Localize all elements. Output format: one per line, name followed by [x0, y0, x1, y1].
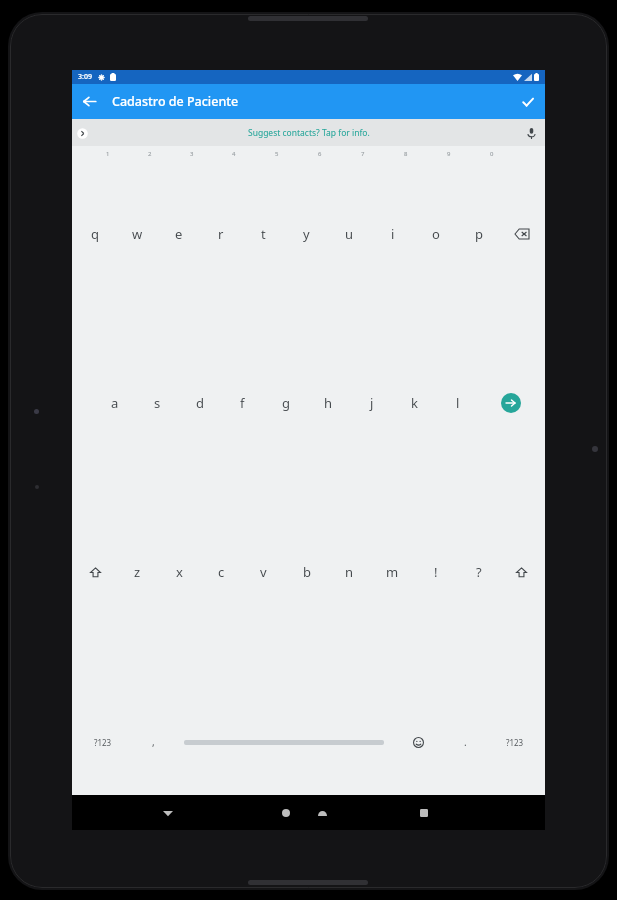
- button[interactable]: j: [350, 318, 393, 487]
- staticText: l: [456, 394, 460, 412]
- button[interactable]: .: [444, 657, 487, 827]
- button[interactable]: p: [457, 149, 500, 318]
- button[interactable]: a: [94, 318, 136, 487]
- button[interactable]: Enter: [479, 318, 543, 487]
- staticText: b: [303, 563, 311, 581]
- staticText: k: [411, 394, 418, 412]
- staticText: d: [196, 394, 204, 412]
- staticText: 2: [148, 150, 152, 158]
- button[interactable]: f: [221, 318, 264, 487]
- button[interactable]: z: [116, 487, 158, 657]
- button[interactable]: m: [371, 487, 414, 657]
- button[interactable]: g: [264, 318, 307, 487]
- button[interactable]: Shift: [74, 487, 116, 657]
- button[interactable]: Hide keyboard: [154, 799, 182, 827]
- button[interactable]: i: [371, 149, 414, 318]
- staticText: 4: [232, 150, 236, 158]
- button[interactable]: Shift: [500, 487, 543, 657]
- button[interactable]: ,: [131, 657, 175, 827]
- button[interactable]: Back: [72, 84, 107, 119]
- staticText: !: [434, 563, 438, 581]
- button[interactable]: Backspace: [500, 149, 543, 318]
- staticText: o: [432, 225, 440, 243]
- button[interactable]: h: [307, 318, 350, 487]
- staticText: j: [370, 394, 374, 412]
- staticText: h: [324, 394, 333, 412]
- button[interactable]: !: [414, 487, 457, 657]
- staticText: 0: [490, 150, 494, 158]
- staticText: r: [218, 225, 224, 243]
- button[interactable]: r: [200, 149, 242, 318]
- staticText: 5: [275, 150, 279, 158]
- button[interactable]: n: [328, 487, 371, 657]
- staticText: m: [386, 563, 399, 581]
- button[interactable]: q: [74, 149, 116, 318]
- staticText: q: [91, 225, 99, 243]
- staticText: u: [345, 225, 354, 243]
- staticText: g: [282, 394, 290, 412]
- button[interactable]: Emoji: [392, 657, 444, 827]
- button[interactable]: Expand suggestions: [74, 125, 90, 141]
- staticText: ?: [476, 563, 482, 581]
- button[interactable]: Space: [175, 657, 392, 827]
- staticText: y: [303, 225, 310, 243]
- button[interactable]: l: [436, 318, 479, 487]
- staticText: 8: [404, 150, 408, 158]
- button[interactable]: Voice input: [523, 125, 539, 141]
- button[interactable]: ?123: [487, 657, 543, 827]
- staticText: x: [176, 563, 183, 581]
- staticText: n: [345, 563, 354, 581]
- staticText: 1: [106, 150, 110, 158]
- staticText: ?123: [94, 737, 112, 748]
- staticText: ,: [152, 735, 155, 749]
- staticText: f: [240, 394, 245, 412]
- button[interactable]: w: [116, 149, 158, 318]
- button[interactable]: ?: [457, 487, 500, 657]
- button[interactable]: ?123: [74, 657, 131, 827]
- staticText: .: [464, 735, 467, 749]
- staticText: z: [134, 563, 141, 581]
- button[interactable]: t: [242, 149, 285, 318]
- button[interactable]: d: [178, 318, 221, 487]
- staticText: v: [260, 563, 267, 581]
- staticText: s: [154, 394, 161, 412]
- button[interactable]: y: [285, 149, 328, 318]
- button[interactable]: s: [136, 318, 178, 487]
- staticText: 3: [190, 150, 194, 158]
- staticText: w: [132, 225, 143, 243]
- button[interactable]: Recent apps: [410, 799, 438, 827]
- button[interactable]: e: [158, 149, 200, 318]
- staticText: e: [175, 225, 183, 243]
- staticText: Cadastro de Paciente: [112, 93, 239, 110]
- button[interactable]: Home: [272, 799, 300, 827]
- button[interactable]: o: [414, 149, 457, 318]
- staticText: i: [391, 225, 395, 243]
- button[interactable]: x: [158, 487, 200, 657]
- button[interactable]: v: [242, 487, 285, 657]
- staticText: a: [111, 394, 119, 412]
- button[interactable]: Save: [510, 84, 545, 119]
- button[interactable]: b: [285, 487, 328, 657]
- button[interactable]: k: [393, 318, 436, 487]
- staticText: 7: [361, 150, 365, 158]
- staticText: t: [261, 225, 266, 243]
- staticText: 6: [318, 150, 322, 158]
- staticText: 3:09: [78, 72, 92, 82]
- button[interactable]: Back: [308, 799, 336, 827]
- staticText: ?123: [506, 737, 524, 748]
- button[interactable]: c: [200, 487, 242, 657]
- button[interactable]: Suggest contacts? Tap for info.: [244, 123, 374, 143]
- button[interactable]: u: [328, 149, 371, 318]
- staticText: c: [218, 563, 225, 581]
- staticText: 9: [447, 150, 451, 158]
- staticText: Suggest contacts? Tap for info.: [248, 127, 370, 139]
- staticText: p: [475, 225, 483, 243]
